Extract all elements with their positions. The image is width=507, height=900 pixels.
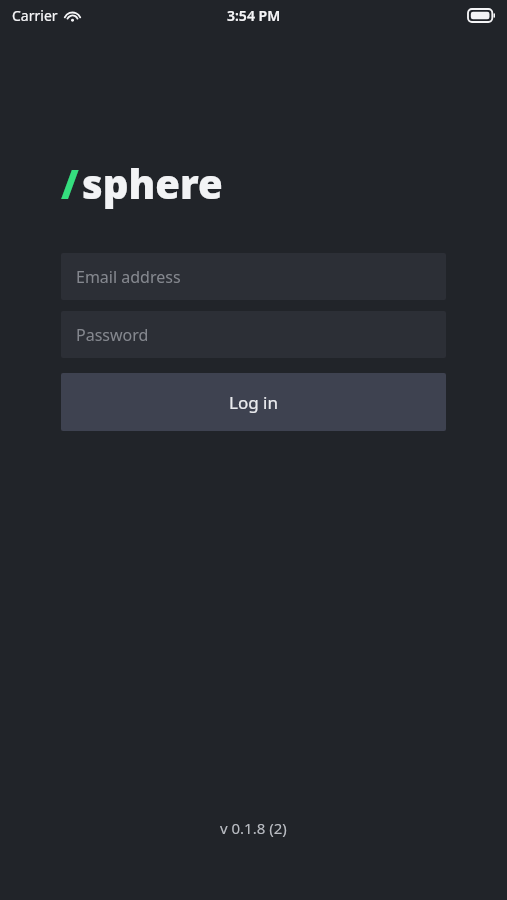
other: Wi-Fi signal [64,9,81,22]
staticText: Email address [76,266,181,288]
staticText: sphere [82,156,223,210]
staticText: / [61,156,79,210]
other: Battery full [468,9,495,22]
staticText: Carrier [12,6,58,25]
staticText: 3:54 PM [227,6,281,25]
staticText: v 0.1.8 (2) [220,818,287,838]
button[interactable]: Log in [61,373,446,431]
button[interactable]: Email address [61,253,446,300]
staticText: Password [76,324,149,346]
staticText: Log in [229,391,278,414]
button[interactable]: Password [61,311,446,358]
